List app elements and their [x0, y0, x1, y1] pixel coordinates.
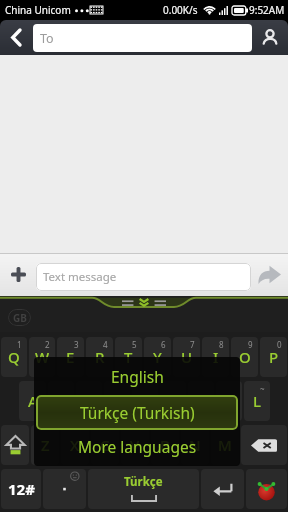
- button[interactable]: U: [173, 337, 200, 377]
- staticText: 1: [17, 339, 22, 350]
- staticText: K: [224, 391, 234, 411]
- button[interactable]: M: [211, 425, 239, 465]
- staticText: L: [253, 391, 262, 411]
- button[interactable]: X: [61, 425, 89, 465]
- staticText: ~: [260, 383, 265, 394]
- button[interactable]: V: [121, 425, 149, 465]
- button[interactable]: Z: [31, 425, 59, 465]
- staticText: Türkçe: [124, 474, 163, 490]
- staticText: Q: [8, 347, 20, 367]
- staticText: S: [57, 391, 66, 411]
- staticText: U: [181, 347, 193, 367]
- staticText: I: [213, 347, 219, 367]
- staticText: 6: [161, 339, 166, 350]
- staticText: To: [40, 30, 54, 47]
- button[interactable]: Backspace: [241, 425, 287, 465]
- button[interactable]: J: [188, 381, 214, 421]
- staticText: D: [84, 391, 95, 411]
- staticText: X: [70, 435, 80, 455]
- button[interactable]: F: [104, 381, 130, 421]
- staticText: GB: [13, 311, 27, 325]
- button[interactable]: English: [34, 357, 240, 395]
- staticText: B: [160, 435, 170, 455]
- staticText: F: [113, 391, 121, 411]
- button[interactable]: S: [48, 381, 74, 421]
- staticText: M: [218, 435, 232, 455]
- button[interactable]: More languages: [34, 430, 240, 462]
- staticText: 12#: [8, 479, 35, 499]
- staticText: 9:52AM: [249, 3, 285, 17]
- button[interactable]: B: [151, 425, 179, 465]
- staticText: T: [124, 347, 133, 367]
- staticText: P: [269, 347, 279, 367]
- button[interactable]: Add attachment: [0, 253, 36, 296]
- button[interactable]: C: [91, 425, 119, 465]
- button[interactable]: Emoji: [246, 469, 287, 509]
- staticText: English: [111, 366, 164, 387]
- button[interactable]: L: [244, 381, 270, 421]
- button[interactable]: Text message: [36, 263, 251, 291]
- button[interactable]: Hide keyboard: [101, 297, 187, 309]
- staticText: O: [239, 347, 251, 367]
- staticText: A: [28, 391, 38, 411]
- staticText: China Unicom: [5, 3, 71, 17]
- button[interactable]: Y: [144, 337, 171, 377]
- button[interactable]: N: [181, 425, 209, 465]
- staticText: Türkçe (Turkish): [80, 402, 195, 423]
- staticText: Y: [153, 347, 162, 367]
- button[interactable]: G: [132, 381, 158, 421]
- button[interactable]: K: [216, 381, 242, 421]
- button[interactable]: T: [115, 337, 142, 377]
- staticText: 5: [132, 339, 137, 350]
- staticText: G: [140, 391, 151, 411]
- button[interactable]: D: [76, 381, 102, 421]
- button[interactable]: 12#: [1, 469, 41, 509]
- button[interactable]: Shift: [1, 425, 29, 465]
- staticText: Z: [41, 435, 50, 455]
- button[interactable]: P: [260, 337, 287, 377]
- staticText: 4: [103, 339, 108, 350]
- staticText: J: [199, 391, 204, 411]
- button[interactable]: Türkçe: [88, 469, 199, 509]
- staticText: More languages: [78, 436, 197, 457]
- staticText: R: [95, 347, 105, 367]
- button[interactable]: Language: [8, 309, 31, 326]
- button[interactable]: O: [231, 337, 258, 377]
- staticText: 0.00K/s: [163, 3, 198, 17]
- button[interactable]: Add contact: [252, 20, 288, 55]
- staticText: V: [130, 435, 140, 455]
- button[interactable]: W: [29, 337, 55, 377]
- button[interactable]: A: [19, 381, 46, 421]
- staticText: E: [66, 347, 75, 367]
- button[interactable]: I: [202, 337, 229, 377]
- staticText: 7: [190, 339, 195, 350]
- staticText: W: [35, 347, 50, 367]
- button[interactable]: To: [33, 24, 252, 52]
- button[interactable]: E: [57, 337, 84, 377]
- staticText: Text message: [43, 269, 117, 285]
- staticText: 8: [219, 339, 224, 350]
- button[interactable]: [43, 469, 86, 509]
- staticText: N: [189, 435, 201, 455]
- button[interactable]: Enter: [201, 469, 244, 509]
- button[interactable]: Q: [1, 337, 27, 377]
- button[interactable]: R: [86, 337, 113, 377]
- staticText: H: [167, 391, 179, 411]
- staticText: C: [100, 435, 110, 455]
- staticText: 9: [248, 339, 253, 350]
- button[interactable]: Back: [0, 20, 33, 55]
- button[interactable]: H: [160, 381, 186, 421]
- staticText: 0: [277, 339, 282, 350]
- staticText: 3: [74, 339, 79, 350]
- button[interactable]: Send: [251, 253, 288, 296]
- button[interactable]: Türkçe (Turkish): [36, 395, 238, 430]
- staticText: 2: [45, 339, 50, 350]
